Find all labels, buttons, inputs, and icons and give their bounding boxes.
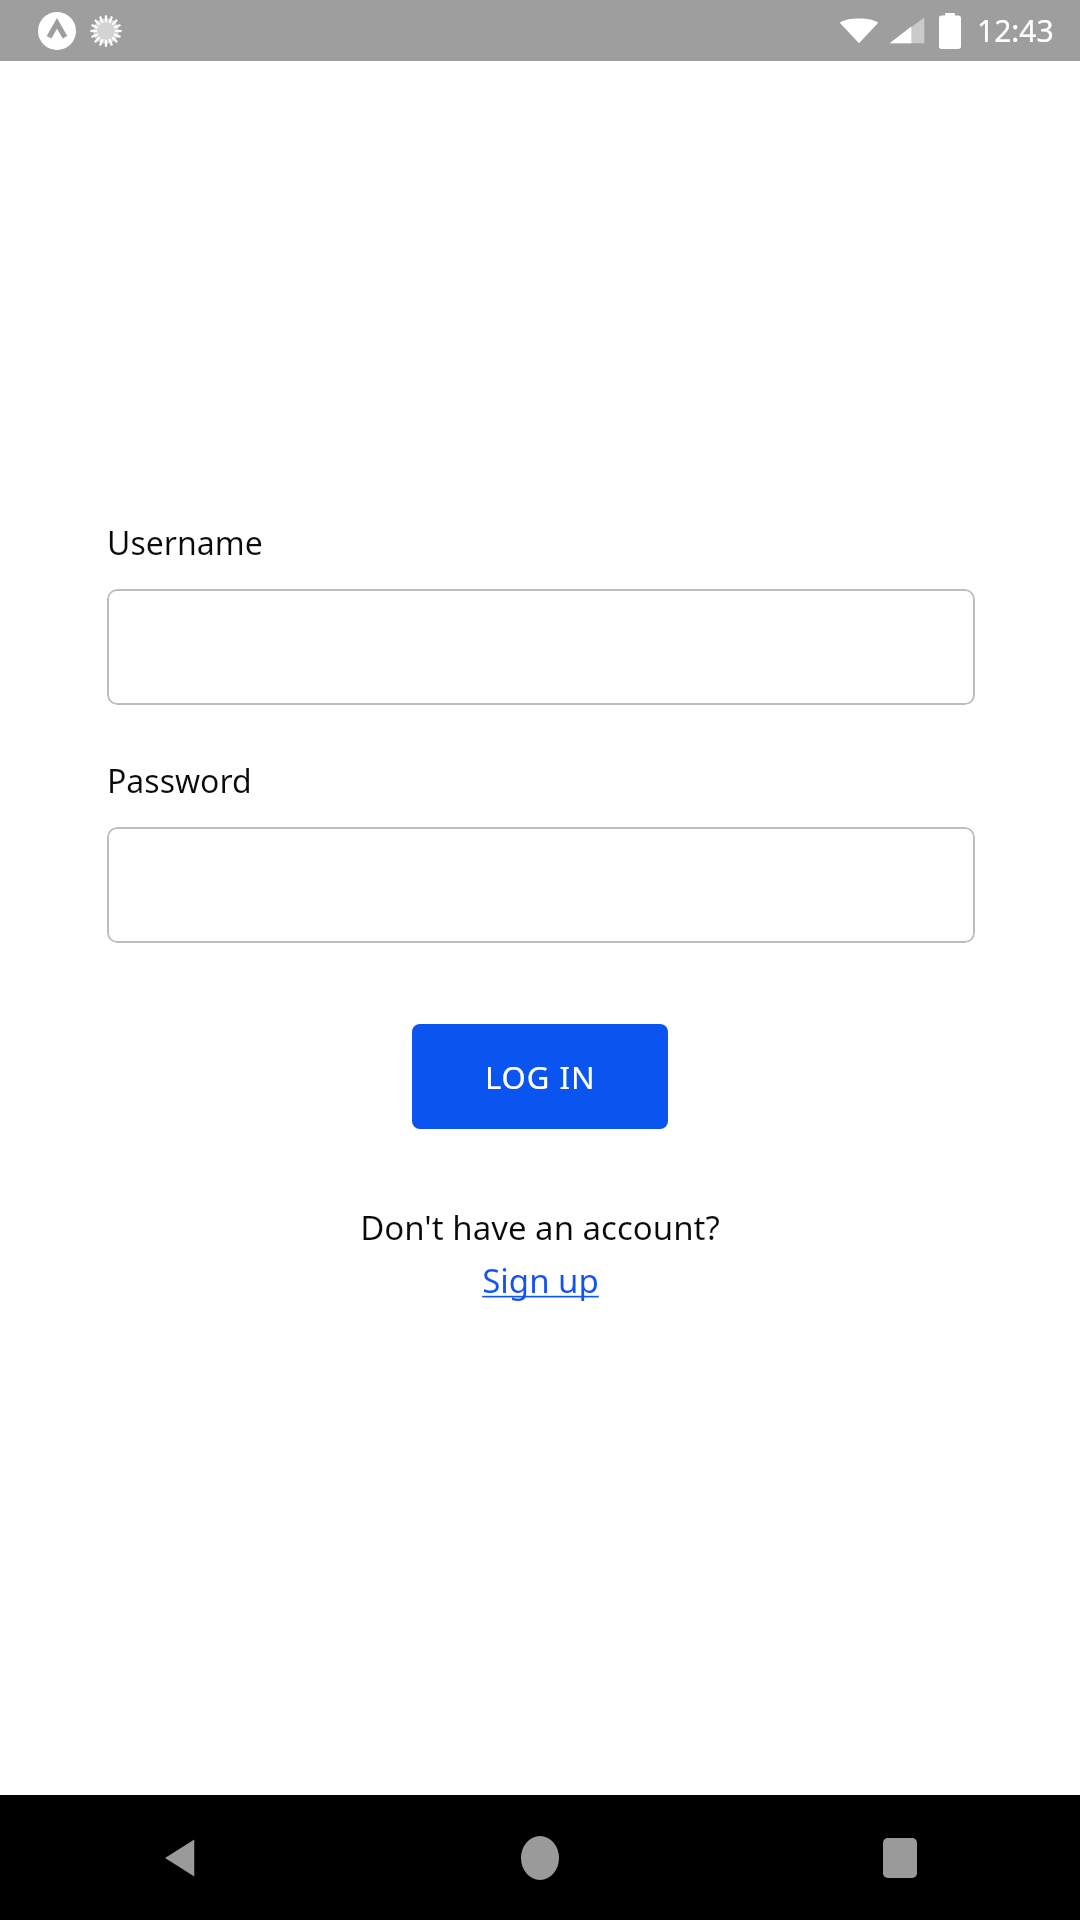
staticText: Sign up — [482, 1258, 599, 1303]
button[interactable] — [107, 589, 975, 705]
staticText: Username — [107, 521, 263, 565]
button[interactable]: Recent apps — [720, 1795, 1080, 1920]
staticText: LOG IN — [485, 1056, 596, 1098]
staticText: 12:43 — [977, 10, 1054, 51]
button[interactable]: Back — [0, 1795, 360, 1920]
button[interactable]: Home — [360, 1795, 720, 1920]
button[interactable] — [107, 827, 975, 943]
staticText: Password — [107, 759, 252, 803]
button[interactable]: LOG IN — [412, 1024, 668, 1129]
staticText: Don't have an account? — [360, 1205, 720, 1250]
button[interactable]: Sign up — [478, 1256, 603, 1305]
